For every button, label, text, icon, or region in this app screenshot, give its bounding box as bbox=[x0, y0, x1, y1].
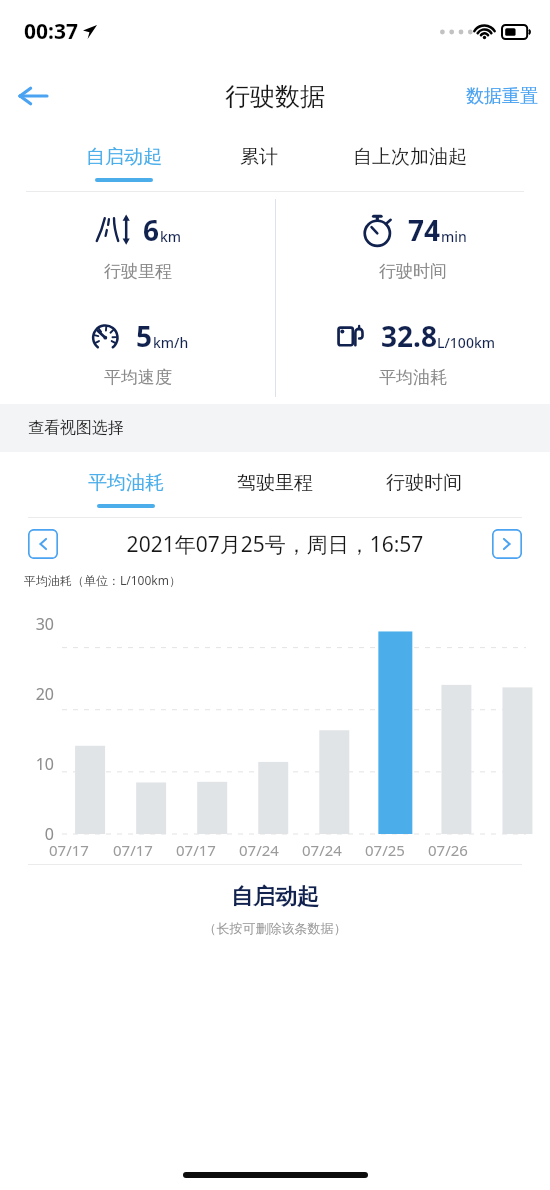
staticText: 10 bbox=[22, 753, 54, 775]
staticText: 32.8 bbox=[381, 317, 437, 355]
staticText: 平均油耗（单位：L/100km） bbox=[24, 572, 181, 588]
staticText: 自启动起 bbox=[0, 883, 550, 911]
button[interactable]: 行驶时间 bbox=[349, 462, 499, 517]
staticText: 07/17 bbox=[113, 840, 153, 860]
staticText: 平均油耗 bbox=[88, 471, 164, 495]
button[interactable]: 驾驶里程 bbox=[201, 462, 349, 517]
staticText: 查看视图选择 bbox=[28, 418, 124, 438]
staticText: km bbox=[160, 227, 182, 246]
staticText: min bbox=[441, 227, 467, 246]
button[interactable]: Back bbox=[6, 69, 60, 123]
staticText: 行驶数据 bbox=[225, 81, 325, 112]
staticText: 行驶时间 bbox=[386, 471, 462, 495]
button[interactable]: Previous bbox=[28, 529, 58, 559]
staticText: km/h bbox=[153, 333, 189, 352]
staticText: 驾驶里程 bbox=[237, 471, 313, 495]
staticText: 07/24 bbox=[239, 840, 279, 860]
staticText: 00:37 bbox=[24, 17, 78, 46]
staticText: 自启动起 bbox=[86, 145, 162, 169]
staticText: 行驶里程 bbox=[104, 261, 172, 282]
staticText: 5 bbox=[136, 317, 153, 355]
button[interactable]: 累计 bbox=[197, 136, 321, 191]
staticText: 平均油耗 bbox=[379, 367, 447, 388]
staticText: 自上次加油起 bbox=[353, 145, 467, 169]
button[interactable]: 平均油耗 bbox=[51, 462, 201, 517]
staticText: 20 bbox=[22, 683, 54, 705]
button[interactable]: 数据重置 bbox=[454, 73, 550, 120]
staticText: 2021年07月25号，周日，16:57 bbox=[58, 530, 492, 559]
staticText: 行驶时间 bbox=[379, 261, 447, 282]
staticText: 数据重置 bbox=[466, 85, 538, 108]
staticText: 07/26 bbox=[428, 840, 468, 860]
staticText: （长按可删除该条数据） bbox=[0, 920, 550, 936]
staticText: 07/17 bbox=[176, 840, 216, 860]
staticText: 07/25 bbox=[365, 840, 405, 860]
staticText: 累计 bbox=[240, 145, 278, 169]
staticText: 07/17 bbox=[49, 840, 89, 860]
staticText: L/100km bbox=[437, 333, 495, 352]
button[interactable]: 自启动起 bbox=[51, 136, 197, 191]
staticText: 74 bbox=[408, 211, 441, 249]
staticText: 07/24 bbox=[302, 840, 342, 860]
button[interactable]: 自上次加油起 bbox=[321, 136, 499, 191]
staticText: 6 bbox=[143, 211, 160, 249]
button[interactable]: Next bbox=[492, 529, 522, 559]
staticText: 0 bbox=[22, 823, 54, 845]
staticText: 平均速度 bbox=[104, 367, 172, 388]
staticText: 30 bbox=[22, 613, 54, 635]
